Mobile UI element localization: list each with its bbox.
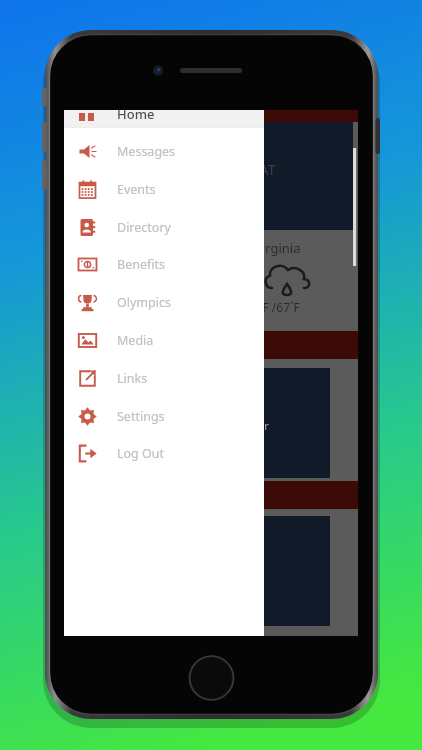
button[interactable]: Events xyxy=(64,171,264,207)
staticText: Messages xyxy=(117,143,176,160)
button[interactable]: Benefits xyxy=(64,246,264,282)
staticText: Links xyxy=(117,370,148,387)
button[interactable]: Media xyxy=(64,322,264,358)
staticText: er xyxy=(258,418,269,433)
staticText: AT xyxy=(259,159,276,179)
staticText: Olympics xyxy=(117,294,171,311)
staticText: Settings xyxy=(117,408,165,425)
button[interactable]: Links xyxy=(64,360,264,396)
staticText: Directory xyxy=(117,219,171,236)
staticText: Virginia xyxy=(254,239,301,257)
button[interactable]: Log Out xyxy=(64,435,264,471)
staticText: Events xyxy=(117,181,156,198)
button[interactable]: Messages xyxy=(64,133,264,169)
button[interactable]: Directory xyxy=(64,209,264,245)
staticText: Home xyxy=(117,105,155,123)
staticText: 0˚F /67˚F xyxy=(252,299,300,315)
staticText: Media xyxy=(117,332,154,349)
staticText: Log Out xyxy=(117,445,165,462)
button[interactable]: Olympics xyxy=(64,284,264,320)
staticText: Benefits xyxy=(117,256,165,273)
button[interactable]: Settings xyxy=(64,398,264,434)
